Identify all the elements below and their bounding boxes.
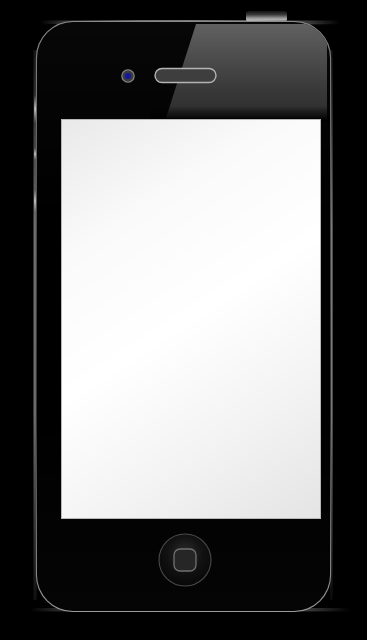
button[interactable]: Smartphone illustration (0, 0, 367, 640)
